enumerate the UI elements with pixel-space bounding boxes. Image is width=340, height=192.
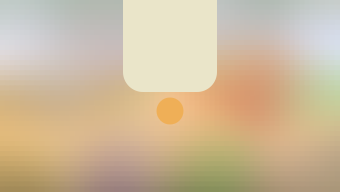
button[interactable]: Album artwork bbox=[123, 0, 217, 92]
button[interactable]: Play bbox=[156, 97, 183, 124]
